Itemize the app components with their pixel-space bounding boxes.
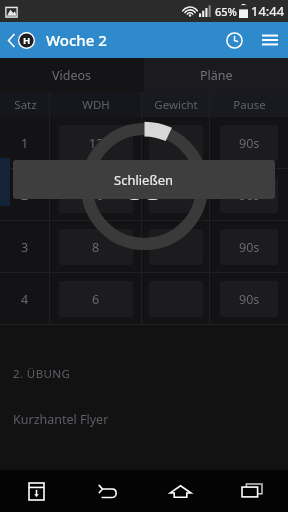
- staticText: 90s: [239, 187, 260, 204]
- staticText: Woche 2: [46, 30, 107, 50]
- staticText: 90s: [239, 239, 260, 256]
- button[interactable]: Hide keyboard: [0, 470, 72, 512]
- button[interactable]: Home: [144, 470, 216, 512]
- button[interactable]: 4: [0, 273, 288, 325]
- button[interactable]: Timer: [216, 22, 252, 58]
- staticText: 85: [125, 164, 164, 210]
- staticText: Gewicht: [154, 97, 198, 113]
- button[interactable]: 2: [0, 169, 288, 221]
- button[interactable]: Back: [0, 22, 42, 58]
- staticText: 1: [21, 135, 29, 152]
- staticText: 90s: [239, 291, 260, 308]
- staticText: H: [23, 34, 31, 47]
- staticText: 10: [89, 187, 104, 204]
- staticText: 2. ÜBUNG: [13, 366, 71, 382]
- staticText: Kurzhantel Flyer: [13, 411, 109, 428]
- button[interactable]: 1: [0, 117, 288, 169]
- staticText: 14:44: [251, 2, 285, 20]
- staticText: Pläne: [200, 67, 233, 84]
- button[interactable]: 3: [0, 221, 288, 273]
- staticText: Pause: [233, 97, 266, 113]
- staticText: Satz: [14, 97, 37, 113]
- staticText: 3: [21, 239, 29, 256]
- button[interactable]: Schließen: [13, 160, 275, 199]
- button[interactable]: Recents: [216, 470, 288, 512]
- button[interactable]: Videos: [0, 58, 144, 92]
- staticText: 90s: [239, 135, 260, 152]
- staticText: 65%: [215, 4, 237, 19]
- staticText: WDH: [82, 97, 110, 113]
- staticText: 4: [21, 291, 29, 308]
- staticText: Schließen: [114, 171, 174, 189]
- button[interactable]: Back: [72, 470, 144, 512]
- button[interactable]: Pläne: [144, 58, 288, 92]
- staticText: 8: [92, 239, 100, 256]
- button[interactable]: Menu: [252, 22, 288, 58]
- staticText: 12: [89, 135, 104, 152]
- staticText: Videos: [52, 67, 92, 84]
- staticText: 2: [21, 187, 29, 204]
- staticText: 6: [92, 291, 100, 308]
